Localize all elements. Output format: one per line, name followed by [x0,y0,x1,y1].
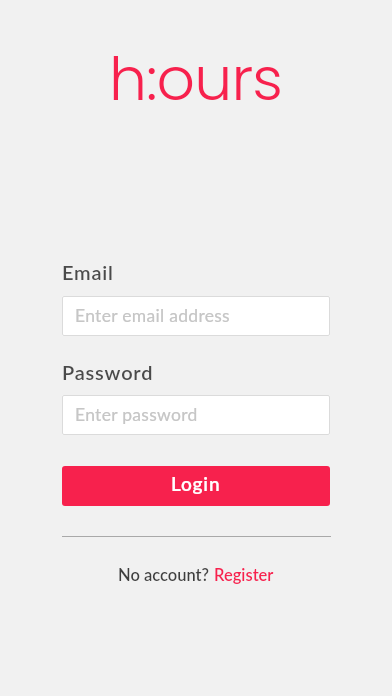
button[interactable]: Register [214,565,274,585]
staticText: Enter email address [75,305,231,326]
staticText: h:ours [109,37,283,121]
staticText: No account? [118,565,214,585]
button[interactable]: Enter password [62,395,330,435]
staticText: Login [171,472,221,495]
button[interactable]: Login [62,466,330,506]
button[interactable]: Enter email address [62,296,330,336]
staticText: Email [62,260,114,284]
staticText: Enter password [75,404,198,425]
staticText: Password [62,360,154,384]
staticText: Register [214,565,274,585]
